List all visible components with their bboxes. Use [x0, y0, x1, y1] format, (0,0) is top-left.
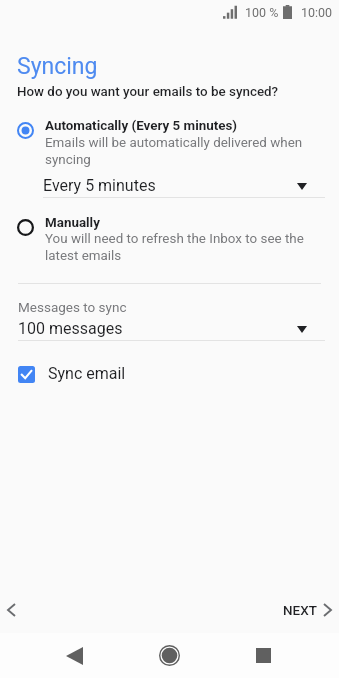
staticText: Every 5 minutes — [43, 176, 156, 195]
button[interactable]: 100 messages — [18, 317, 324, 345]
staticText: 10:00 — [301, 5, 333, 20]
staticText: Sync email — [48, 364, 126, 383]
button[interactable]: Back — [52, 633, 97, 678]
staticText: 100 messages — [18, 319, 123, 338]
button[interactable]: Every 5 minutes — [43, 174, 324, 202]
staticText: Automatically (Every 5 minutes) — [45, 118, 238, 134]
button[interactable]: Previous — [0, 588, 30, 632]
staticText: Manually — [45, 215, 100, 231]
button[interactable]: Sync email — [0, 358, 339, 392]
button[interactable]: Manually — [0, 205, 339, 263]
button[interactable]: NEXT — [272, 588, 338, 632]
staticText: NEXT — [283, 602, 317, 618]
staticText: How do you want your emails to be synced… — [17, 84, 279, 100]
staticText: Emails will be automatically delivered w… — [45, 135, 307, 167]
button[interactable]: Recents — [241, 633, 286, 678]
button[interactable]: Home — [147, 633, 192, 678]
staticText: Messages to sync — [18, 299, 127, 315]
staticText: You will need to refresh the Inbox to se… — [45, 231, 313, 263]
staticText: Syncing — [17, 53, 98, 80]
staticText: 100 % — [245, 5, 279, 20]
button[interactable]: Automatically (Every 5 minutes) — [0, 113, 339, 168]
